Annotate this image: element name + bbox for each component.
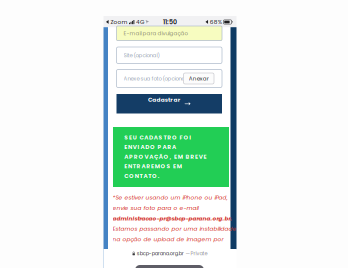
button[interactable]: Anexe sua foto (opcional)	[116, 69, 222, 87]
staticText: *Se estiver usando um iPhone ou iPad,	[112, 193, 227, 201]
staticText: na opção de upload de imagem por	[112, 235, 223, 243]
staticText: Anexe sua foto (opcional)	[123, 75, 188, 82]
staticText: administracao-pr@sbcp-parana.org.br.	[112, 214, 232, 222]
staticText: ENTRAREMOS EM	[124, 162, 182, 170]
staticText: ENVIADO PARA	[124, 143, 176, 151]
staticText: envie sua foto para o e-mail	[112, 204, 198, 212]
staticText: Cadastrar	[148, 95, 180, 112]
staticText: CONTATO.	[124, 172, 160, 180]
staticText: SEU CADASTRO FOI	[124, 133, 191, 141]
staticText: APROVAÇÃO, EM BREVE	[124, 153, 207, 161]
staticText: 4G	[136, 18, 144, 26]
button[interactable]: E-mail para divulgação	[116, 26, 222, 40]
button[interactable]: Cadastrar	[116, 94, 222, 113]
staticText: sbcp-parana.org.br	[137, 250, 184, 257]
staticText: Zoom	[110, 18, 127, 26]
staticText: Estamos passando por uma instabilidade	[112, 225, 236, 233]
staticText: 68%	[210, 18, 222, 26]
staticText: 11:50	[163, 18, 177, 26]
button[interactable]: sbcp-parana.org.br	[103, 250, 236, 257]
staticText: E-mail para divulgação	[123, 29, 187, 37]
staticText: — Private	[186, 250, 208, 257]
button[interactable]: Site (opcional)	[116, 47, 222, 63]
staticText: Site (opcional)	[123, 51, 159, 59]
staticText: Anexar	[189, 75, 209, 82]
button[interactable]: Anexar	[183, 73, 214, 84]
